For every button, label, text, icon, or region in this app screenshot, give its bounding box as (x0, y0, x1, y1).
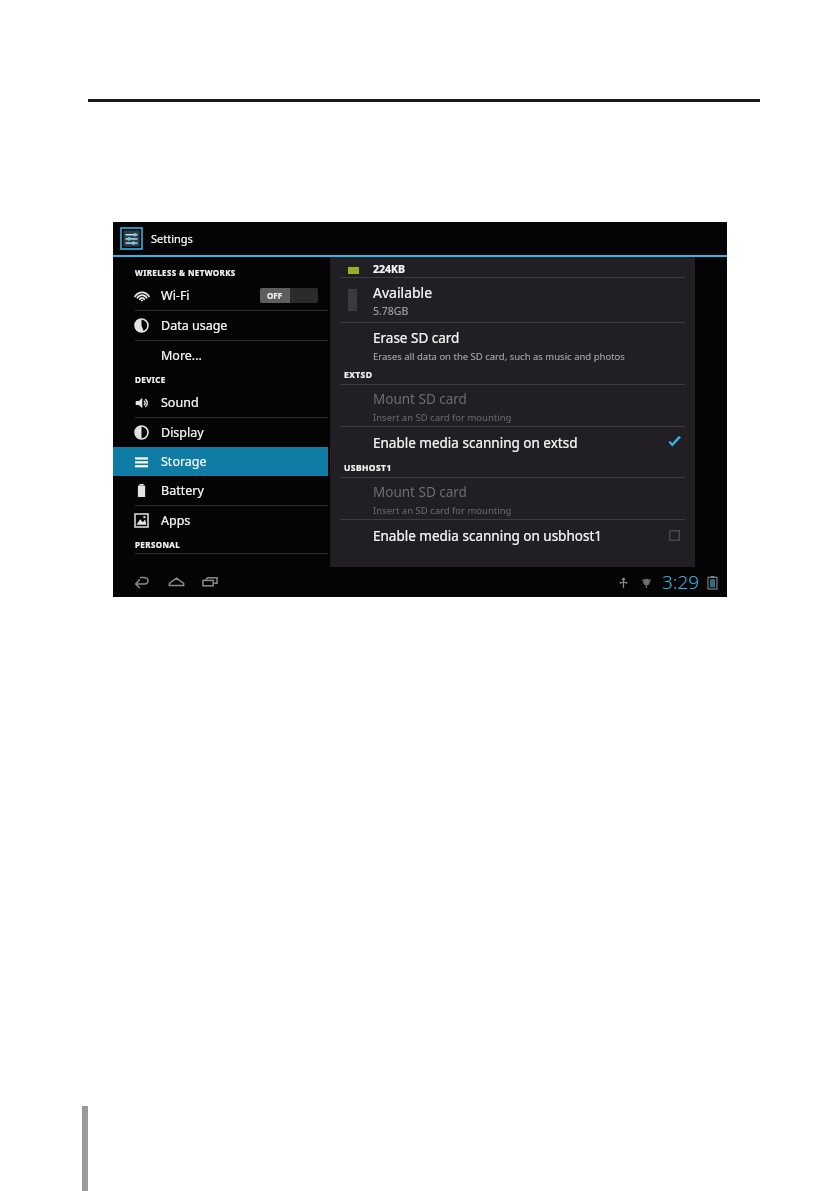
staticText: Enable media scanning on usbhost1 (373, 527, 602, 545)
staticText: 3:29 (662, 569, 700, 595)
button[interactable]: Display (113, 418, 328, 447)
button[interactable]: OFF (260, 288, 318, 303)
staticText: Wi-Fi (161, 287, 190, 304)
staticText: OFF (267, 290, 283, 301)
button[interactable]: More... (113, 341, 328, 370)
staticText: Erase SD card (373, 329, 460, 347)
staticText: Mount SD card (373, 390, 467, 408)
staticText: EXTSD (344, 369, 373, 381)
staticText: 224KB (373, 262, 405, 276)
button[interactable]: Data usage (113, 311, 328, 340)
staticText: PERSONAL (135, 539, 181, 550)
staticText: 5.78GB (373, 304, 409, 318)
staticText: Mount SD card (373, 483, 467, 501)
button[interactable]: Home (159, 567, 193, 597)
staticText: Display (161, 424, 204, 441)
button[interactable]: Wi-Fi (113, 281, 328, 310)
staticText: Erases all data on the SD card, such as … (373, 350, 625, 363)
staticText: USBHOST1 (344, 462, 392, 474)
staticText: Battery (161, 482, 204, 499)
button[interactable]: Apps (113, 506, 328, 535)
button[interactable]: Storage (113, 447, 328, 476)
staticText: Insert an SD card for mounting (373, 504, 512, 517)
staticText: Data usage (161, 317, 228, 334)
button[interactable]: Sound (113, 388, 328, 417)
button[interactable]: Enable media scanning on extsd (330, 427, 695, 458)
staticText: WIRELESS & NETWORKS (135, 267, 236, 278)
button[interactable]: Erase SD card (330, 323, 695, 365)
button[interactable]: Recent apps (193, 567, 227, 597)
button[interactable]: 224KB (330, 257, 695, 277)
button[interactable]: Back (125, 567, 159, 597)
staticText: Available (373, 283, 433, 302)
staticText: Settings (151, 231, 193, 246)
button[interactable]: Enable media scanning on usbhost1 (330, 520, 695, 551)
staticText: Storage (161, 453, 207, 470)
staticText: Enable media scanning on extsd (373, 434, 578, 452)
staticText: Apps (161, 512, 191, 529)
button[interactable]: Battery (113, 476, 328, 505)
button[interactable]: Available (330, 278, 695, 322)
staticText: Sound (161, 394, 199, 411)
staticText: Insert an SD card for mounting (373, 411, 512, 424)
staticText: More... (161, 347, 202, 364)
staticText: DEVICE (135, 374, 166, 385)
